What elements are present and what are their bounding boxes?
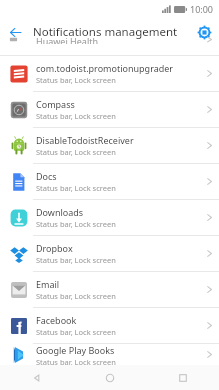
staticText: Status bar, Lock screen [36,219,116,229]
staticText: Facebook [36,314,77,326]
staticText: Docs [36,170,57,182]
staticText: Status bar, Lock screen [36,111,116,121]
staticText: Email [36,278,60,290]
staticText: 10:00 [190,3,214,15]
button[interactable]: Dropbox [0,236,219,272]
staticText: Status bar, Lock screen [36,357,116,365]
button[interactable]: Docs [0,164,219,200]
button[interactable]: Email [0,272,219,308]
staticText: DisableTodoistReceiver [36,134,134,146]
button[interactable]: Google Play Books [0,344,219,365]
button[interactable]: DisableTodoistReceiver [0,128,219,164]
button[interactable]: Back [0,18,30,46]
staticText: Status bar, Lock screen [36,291,116,301]
staticText: Status bar, Lock screen [36,183,116,193]
staticText: Status bar, Lock screen [36,147,116,157]
button[interactable]: Facebook [0,308,219,344]
staticText: Compass [36,98,75,110]
button[interactable]: Settings [189,18,219,46]
button[interactable]: Home [73,365,146,390]
button[interactable]: Back [0,365,73,390]
button[interactable]: com.todoist.promotionupgrader [0,56,219,92]
staticText: com.todoist.promotionupgrader [36,62,174,74]
button[interactable]: Compass [0,92,219,128]
staticText: Downloads [36,206,84,218]
staticText: Google Play Books [36,344,115,356]
button[interactable]: Downloads [0,200,219,236]
button[interactable]: Recents [146,365,219,390]
staticText: Status bar, Lock screen [36,327,116,337]
staticText: Status bar, Lock screen [36,255,116,265]
staticText: Status bar, Lock screen [36,75,116,85]
staticText: Dropbox [36,242,73,254]
staticText: Notifications management [33,24,178,40]
staticText: Huawei Health [36,35,99,44]
